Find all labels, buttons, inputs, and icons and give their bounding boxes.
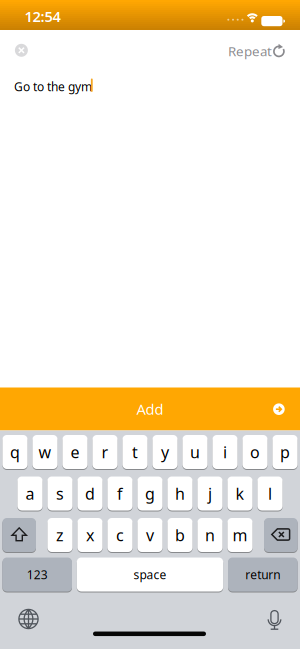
staticText: Repeat (228, 42, 272, 60)
staticText: y (161, 441, 169, 463)
staticText: t (132, 441, 138, 463)
staticText: u (190, 441, 200, 463)
button[interactable]: space (77, 557, 223, 591)
button[interactable]: 123 (2, 557, 72, 591)
staticText: k (235, 483, 244, 504)
button[interactable]: v (137, 518, 163, 552)
staticText: space (133, 566, 166, 582)
staticText: d (85, 483, 95, 504)
staticText: return (245, 566, 280, 582)
button[interactable]: Add (0, 387, 300, 430)
button[interactable]: d (77, 476, 103, 510)
staticText: v (146, 524, 154, 546)
button[interactable]: c (107, 518, 133, 552)
button[interactable]: r (92, 435, 118, 469)
button[interactable]: x (77, 518, 103, 552)
staticText: Go to the gym (14, 78, 92, 94)
button[interactable]: Repeat (162, 41, 272, 61)
staticText: n (205, 524, 215, 546)
staticText: f (117, 483, 123, 504)
staticText: p (280, 441, 290, 463)
staticText: Add (136, 399, 163, 419)
staticText: m (232, 524, 247, 546)
staticText: b (175, 524, 185, 546)
button[interactable]: q (2, 435, 28, 469)
staticText: 123 (27, 566, 48, 582)
button[interactable] (10, 39, 33, 62)
button[interactable]: t (122, 435, 148, 469)
button[interactable] (264, 518, 298, 552)
staticText: 12:54 (24, 6, 60, 26)
button[interactable]: s (47, 476, 73, 510)
staticText: q (10, 441, 20, 463)
button[interactable]: u (182, 435, 208, 469)
button[interactable]: f (107, 476, 133, 510)
staticText: c (116, 524, 124, 546)
staticText: g (145, 483, 155, 504)
staticText: j (208, 483, 212, 504)
button[interactable]: i (212, 435, 238, 469)
button[interactable]: j (197, 476, 223, 510)
staticText: a (25, 483, 34, 504)
button[interactable]: a (17, 476, 43, 510)
staticText: r (101, 441, 108, 463)
staticText: i (223, 441, 227, 463)
staticText: h (175, 483, 185, 504)
staticText: l (268, 483, 272, 504)
button[interactable]: z (47, 518, 73, 552)
button[interactable]: e (62, 435, 88, 469)
button[interactable]: return (228, 557, 298, 591)
button[interactable]: l (257, 476, 283, 510)
button[interactable] (259, 603, 289, 637)
button[interactable]: b (167, 518, 193, 552)
staticText: e (70, 441, 79, 463)
button[interactable]: o (242, 435, 268, 469)
button[interactable] (11, 602, 45, 636)
button[interactable]: h (167, 476, 193, 510)
button[interactable]: y (152, 435, 178, 469)
staticText: x (86, 524, 94, 546)
button[interactable]: g (137, 476, 163, 510)
staticText: s (56, 483, 64, 504)
staticText: o (250, 441, 260, 463)
staticText: w (38, 441, 51, 463)
button[interactable]: k (227, 476, 253, 510)
staticText: z (56, 524, 64, 546)
button[interactable]: m (227, 518, 253, 552)
button[interactable] (2, 518, 36, 552)
button[interactable]: w (32, 435, 58, 469)
button[interactable]: p (272, 435, 298, 469)
button[interactable]: n (197, 518, 223, 552)
